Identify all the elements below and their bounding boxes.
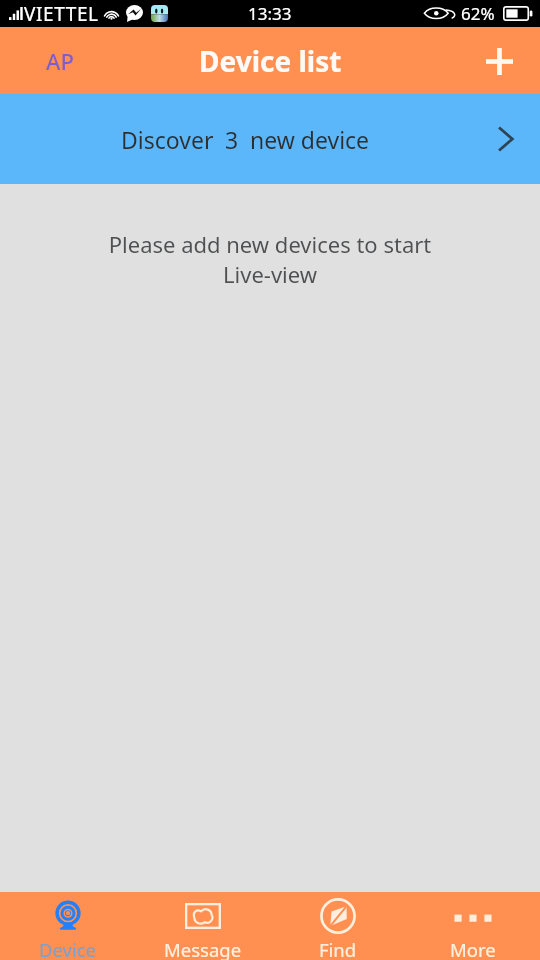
staticText: Please add new devices to start Live-vie…	[0, 229, 540, 290]
button[interactable]: Message	[135, 892, 270, 960]
button[interactable]: More	[405, 892, 540, 960]
button[interactable]: Discover	[0, 94, 540, 184]
button[interactable]: Add device	[476, 38, 522, 84]
staticText: Device list	[199, 42, 342, 80]
staticText: 62%	[461, 2, 495, 25]
staticText: More	[450, 937, 496, 960]
staticText: new device	[250, 124, 370, 155]
staticText: VIETTEL	[24, 1, 99, 27]
staticText: 13:33	[248, 2, 292, 25]
staticText: Message	[164, 937, 242, 960]
staticText: Discover	[121, 124, 214, 155]
staticText: Device	[39, 937, 97, 960]
button[interactable]: Device	[0, 892, 135, 960]
button[interactable]: AP	[36, 38, 84, 84]
staticText: AP	[46, 46, 74, 76]
staticText: Find	[319, 937, 357, 960]
button[interactable]: Find	[270, 892, 405, 960]
staticText: 3	[225, 124, 239, 155]
